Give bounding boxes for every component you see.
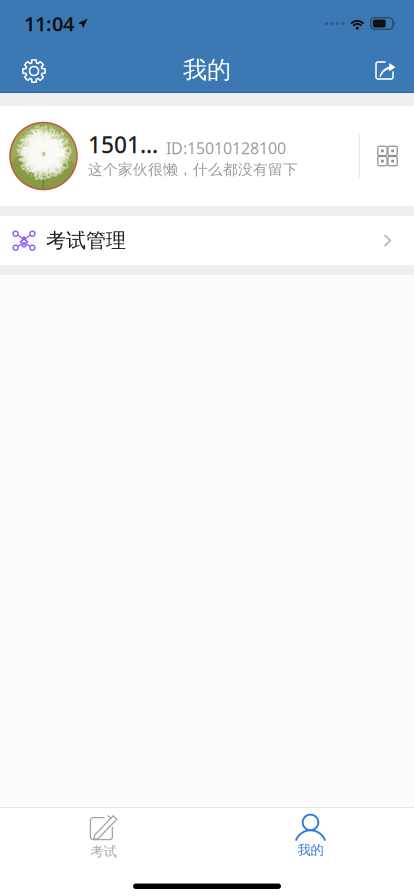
staticText: 11:04 <box>24 10 74 37</box>
staticText: 这个家伙很懒，什么都没有留下 <box>88 160 298 178</box>
staticText: 我的 <box>183 55 231 85</box>
button[interactable]: 我的 <box>207 808 414 858</box>
staticText: 我的 <box>297 842 323 858</box>
button[interactable]: 考试管理 <box>0 216 414 265</box>
staticText: ID:15010128100 <box>166 137 286 158</box>
staticText: 考试管理 <box>46 228 126 253</box>
staticText: 1501... <box>88 129 158 159</box>
button[interactable]: 考试 <box>0 808 207 858</box>
button[interactable]: 分享 <box>363 44 409 93</box>
button[interactable]: 1501... <box>0 106 414 206</box>
staticText: 考试 <box>90 843 116 860</box>
button[interactable]: 设置 <box>11 44 57 93</box>
